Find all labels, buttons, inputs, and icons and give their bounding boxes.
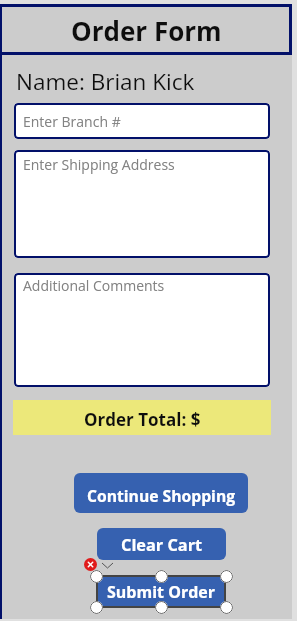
- staticText: Enter Branch #: [23, 112, 121, 131]
- button[interactable]: Enter Shipping Address: [14, 150, 270, 258]
- button[interactable]: Order Total: $: [13, 400, 271, 435]
- staticText: Enter Shipping Address: [23, 155, 175, 174]
- button[interactable]: Resize handle: [220, 570, 233, 583]
- button[interactable]: Enter Branch #: [14, 103, 270, 139]
- button[interactable]: Resize handle: [220, 601, 233, 614]
- button[interactable]: Order Form: [0, 4, 292, 54]
- button[interactable]: Submit Order: [96, 575, 226, 608]
- staticText: Clear Cart: [121, 534, 203, 556]
- button[interactable]: Resize handle: [155, 570, 168, 583]
- staticText: Additional Comments: [23, 276, 165, 295]
- button[interactable]: Additional Comments: [14, 273, 270, 387]
- button[interactable]: Resize handle: [155, 601, 168, 614]
- staticText: Name: Brian Kick: [16, 66, 195, 97]
- button[interactable]: Continue Shopping: [74, 473, 248, 513]
- button[interactable]: Resize handle: [90, 601, 103, 614]
- staticText: Order Total: $: [84, 408, 201, 431]
- button[interactable]: Resize handle: [90, 570, 103, 583]
- button[interactable]: Clear Cart: [97, 528, 226, 560]
- staticText: Submit Order: [107, 581, 215, 603]
- staticText: Order Form: [71, 13, 222, 48]
- button[interactable]: Delete: [84, 558, 97, 571]
- staticText: Continue Shopping: [87, 485, 236, 506]
